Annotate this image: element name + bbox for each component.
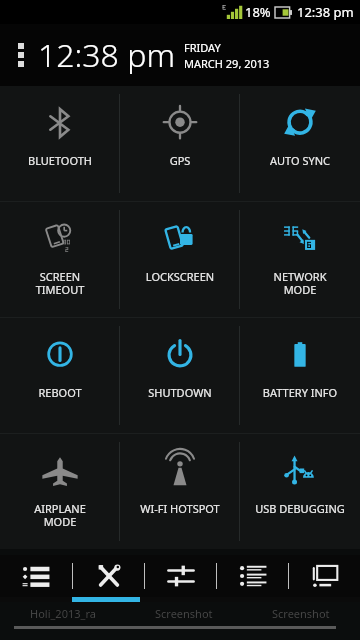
staticText: USB DEBUGGING (240, 501, 360, 516)
staticText: AIRPLANE MODE (0, 501, 120, 529)
staticText: NETWORK MODE (240, 269, 360, 297)
staticText: LOCKSCREEN (120, 269, 240, 284)
staticText: BLUETOOTH (0, 153, 120, 168)
staticText: MARCH 29, 2013 (184, 56, 270, 71)
staticText: SHUTDOWN (120, 385, 240, 400)
staticText: Screenshot (272, 606, 330, 621)
button[interactable]: Quick settings list (0, 555, 72, 597)
staticText: FRIDAY (184, 40, 221, 55)
staticText: 12:38 pm (297, 3, 354, 21)
staticText: Holi_2013_ra (30, 606, 96, 621)
button[interactable]: LOCKSCREEN (120, 202, 240, 317)
button[interactable]: NETWORK MODE (240, 202, 360, 317)
button[interactable]: SHUTDOWN (120, 318, 240, 433)
button[interactable]: Details list (217, 555, 288, 597)
staticText: 12:38 pm (38, 33, 175, 77)
button[interactable]: AUTO SYNC (240, 86, 360, 201)
button[interactable]: REBOOT (0, 318, 120, 433)
button[interactable]: USB DEBUGGING (240, 434, 360, 549)
staticText: REBOOT (0, 385, 120, 400)
button[interactable]: More options (10, 35, 32, 75)
staticText: WI-FI HOTSPOT (120, 501, 240, 516)
staticText: GPS (120, 153, 240, 168)
button[interactable]: BATTERY INFO (240, 318, 360, 433)
staticText: SCREEN TIMEOUT (0, 269, 120, 297)
button[interactable]: GPS (120, 86, 240, 201)
button[interactable]: Layout (289, 555, 360, 597)
staticText: 18% (245, 3, 271, 21)
button[interactable]: SCREEN TIMEOUT (0, 202, 120, 317)
button[interactable]: Tools (73, 555, 144, 597)
button[interactable]: Sliders (145, 555, 216, 597)
button[interactable]: WI-FI HOTSPOT (120, 434, 240, 549)
staticText: BATTERY INFO (240, 385, 360, 400)
staticText: Screenshot (155, 606, 213, 621)
button[interactable]: AIRPLANE MODE (0, 434, 120, 549)
staticText: AUTO SYNC (240, 153, 360, 168)
button[interactable]: BLUETOOTH (0, 86, 120, 201)
